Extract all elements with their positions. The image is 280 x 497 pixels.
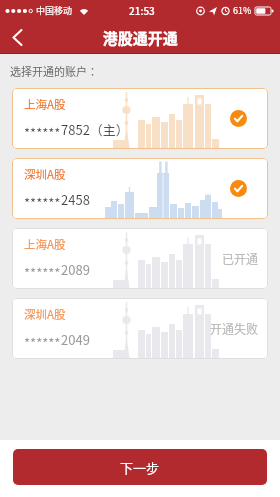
staticText: 2089 <box>61 260 90 279</box>
staticText: ****** <box>24 193 61 212</box>
staticText: 下一步 <box>120 458 160 477</box>
staticText: 2049 <box>61 330 90 349</box>
staticText: 深圳A股 <box>24 306 66 323</box>
staticText: 上海A股 <box>24 236 66 253</box>
staticText: 7852（主） <box>61 120 129 139</box>
staticText: ****** <box>24 123 61 142</box>
button[interactable]: 深圳A股 <box>12 298 268 359</box>
staticText: ****** <box>24 263 61 282</box>
button[interactable] <box>0 20 34 54</box>
staticText: ****** <box>24 333 61 352</box>
staticText: 21:53 <box>129 3 155 17</box>
staticText: 已开通 <box>222 250 259 267</box>
button[interactable]: 上海A股 <box>12 228 268 289</box>
staticText: 61% <box>233 4 252 17</box>
staticText: 开通失败 <box>210 320 259 337</box>
button[interactable]: 深圳A股 <box>12 158 268 219</box>
staticText: 上海A股 <box>24 96 66 113</box>
staticText: 2458 <box>61 190 90 209</box>
staticText: 深圳A股 <box>24 166 66 183</box>
button[interactable]: 上海A股 <box>12 88 268 149</box>
button[interactable]: 下一步 <box>13 449 267 485</box>
staticText: 选择开通的账户： <box>10 63 98 79</box>
staticText: 港股通开通 <box>103 27 178 48</box>
staticText: 中国移动 <box>36 4 73 17</box>
